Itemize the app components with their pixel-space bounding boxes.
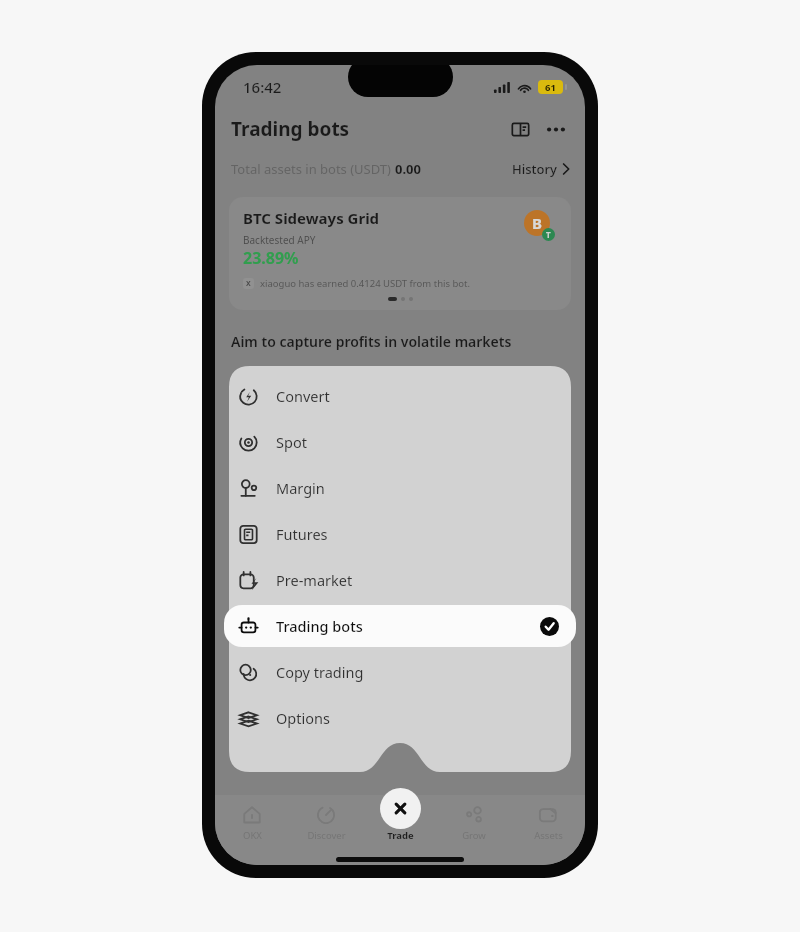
staticText: X bbox=[246, 279, 251, 289]
staticText: T bbox=[546, 229, 551, 240]
staticText: 16:42 bbox=[243, 77, 282, 97]
staticText: 23.89% bbox=[243, 247, 299, 269]
staticText: Copy trading bbox=[276, 662, 364, 682]
staticText: Total assets in bots (USDT) bbox=[231, 160, 395, 178]
staticText: Trade bbox=[387, 829, 414, 842]
staticText: Discover bbox=[307, 829, 346, 842]
staticText: xiaoguo has earned 0.4124 USDT from this… bbox=[260, 277, 471, 290]
button[interactable]: Trade bbox=[363, 802, 437, 844]
staticText: Options bbox=[276, 708, 330, 728]
staticText: Spot bbox=[276, 432, 307, 452]
staticText: Margin bbox=[276, 478, 325, 498]
staticText: B bbox=[532, 213, 542, 233]
staticText: 0.00 bbox=[395, 160, 421, 178]
staticText: Trading bots bbox=[276, 616, 363, 636]
button[interactable]: Tutorial bbox=[504, 113, 536, 145]
button[interactable]: Options bbox=[229, 695, 571, 741]
button[interactable]: History bbox=[512, 155, 569, 183]
staticText: Convert bbox=[276, 386, 330, 406]
button[interactable]: Convert bbox=[229, 373, 571, 419]
staticText: Assets bbox=[534, 829, 563, 842]
staticText: Pre-market bbox=[276, 570, 353, 590]
button[interactable]: More options bbox=[540, 113, 572, 145]
staticText: History bbox=[512, 160, 557, 178]
staticText: OKX bbox=[243, 829, 262, 842]
button[interactable]: BTC Sideways Grid bbox=[229, 197, 571, 310]
staticText: BTC Sideways Grid bbox=[243, 208, 380, 228]
staticText: Grow bbox=[462, 829, 486, 842]
button[interactable]: Pre-market bbox=[229, 557, 571, 603]
button[interactable]: Copy trading bbox=[229, 649, 571, 695]
button[interactable]: Margin bbox=[229, 465, 571, 511]
button[interactable]: Futures bbox=[229, 511, 571, 557]
staticText: Futures bbox=[276, 524, 328, 544]
staticText: 61 bbox=[545, 81, 556, 94]
button[interactable]: Spot bbox=[229, 419, 571, 465]
button[interactable]: OKX bbox=[215, 802, 289, 844]
button[interactable]: Trading bots bbox=[224, 605, 576, 647]
staticText: Trading bots bbox=[231, 116, 350, 142]
button[interactable]: Close trade menu bbox=[380, 788, 421, 829]
staticText: Backtested APY bbox=[243, 233, 316, 247]
staticText: Aim to capture profits in volatile marke… bbox=[231, 332, 512, 351]
button[interactable]: Dismiss menu bbox=[215, 65, 585, 865]
button[interactable]: Assets bbox=[511, 802, 585, 844]
button[interactable]: Discover bbox=[289, 802, 363, 844]
